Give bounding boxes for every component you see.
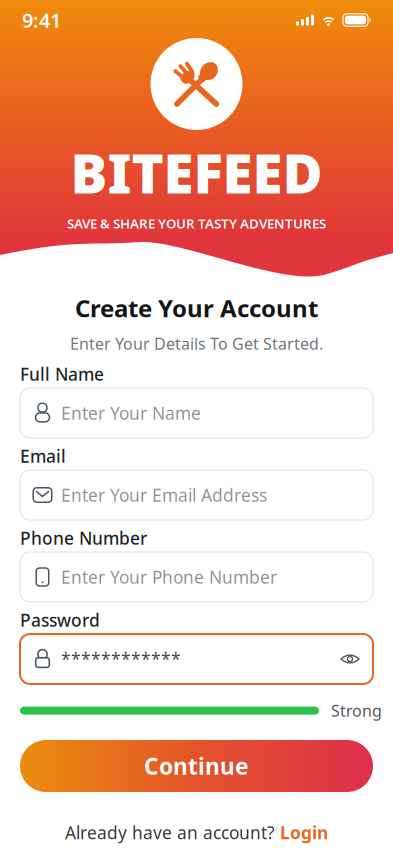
staticText: Enter Your Email Address xyxy=(61,483,267,506)
staticText: Login xyxy=(280,821,328,844)
staticText: Enter Your Phone Number xyxy=(61,565,277,588)
staticText: Full Name xyxy=(20,362,104,385)
staticText: ************ xyxy=(61,647,181,670)
staticText: Already have an account? xyxy=(65,821,275,844)
button[interactable]: ************ xyxy=(20,634,373,684)
staticText: 9:41 xyxy=(22,7,61,33)
staticText: Enter Your Name xyxy=(61,401,201,424)
staticText: Continue xyxy=(144,751,249,781)
staticText: BITEFEED xyxy=(70,136,322,209)
button[interactable]: Continue xyxy=(20,740,373,792)
button[interactable]: Login xyxy=(280,821,328,844)
staticText: Create Your Account xyxy=(75,292,318,324)
staticText: SAVE & SHARE YOUR TASTY ADVENTURES xyxy=(67,215,326,232)
button[interactable]: Enter Your Email Address xyxy=(20,470,373,520)
staticText: Password xyxy=(20,608,100,631)
button[interactable]: Enter Your Name xyxy=(20,388,373,438)
button[interactable]: Enter Your Phone Number xyxy=(20,552,373,602)
staticText: Email xyxy=(20,444,66,467)
staticText: Strong xyxy=(331,700,382,721)
staticText: Enter Your Details To Get Started. xyxy=(70,333,323,354)
staticText: Phone Number xyxy=(20,526,147,549)
